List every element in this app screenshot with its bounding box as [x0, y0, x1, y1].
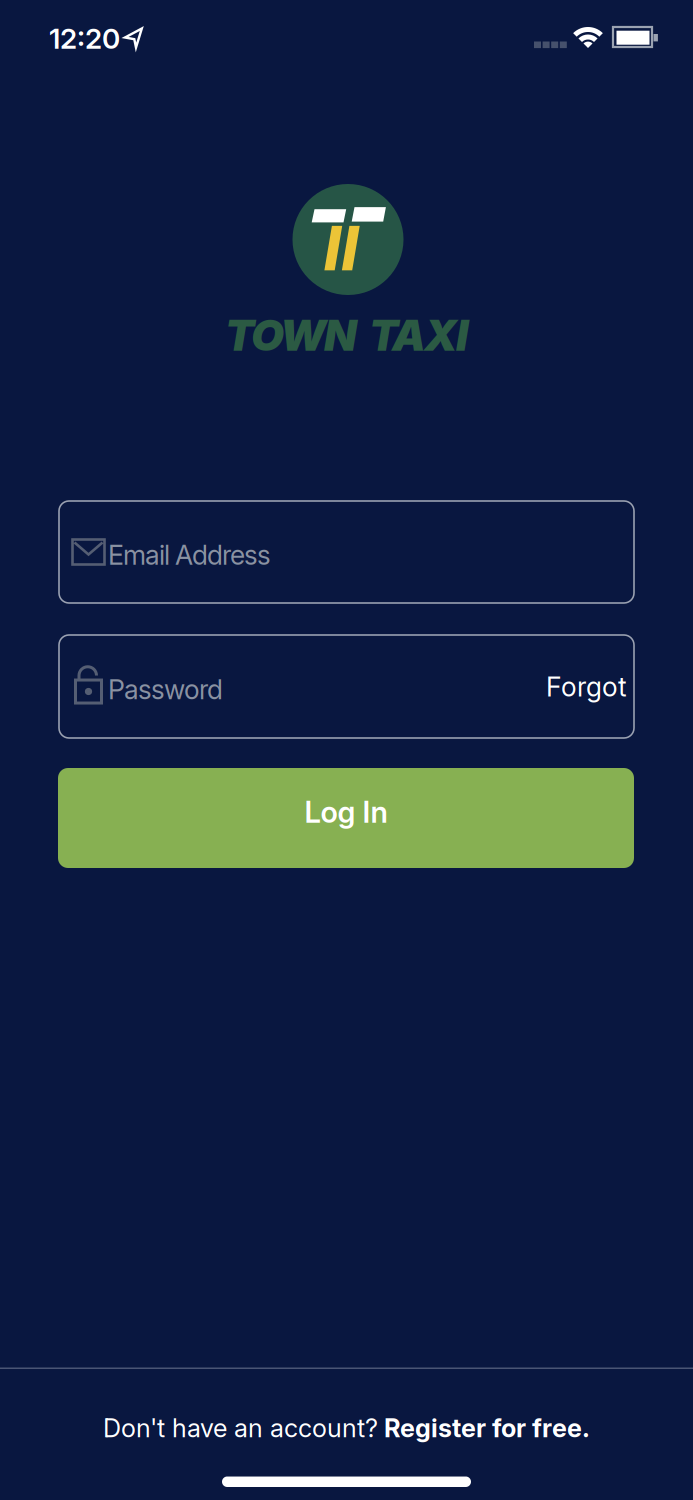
button[interactable]: Email Address	[59, 501, 634, 603]
staticText: Forgot	[546, 671, 627, 702]
staticText: Register for free.	[384, 1413, 590, 1443]
button[interactable]: Don't have an account?	[103, 1413, 590, 1443]
button[interactable]: Log In	[58, 768, 634, 868]
staticText: Don't have an account?	[103, 1413, 378, 1443]
staticText: 12:20	[49, 22, 120, 55]
button[interactable]: Forgot	[546, 671, 627, 702]
staticText: TOWN TAXI	[225, 310, 468, 360]
staticText: Password	[108, 674, 223, 705]
button[interactable]: Password	[59, 635, 634, 738]
staticText: Email Address	[108, 539, 271, 571]
staticText: Log In	[304, 795, 387, 829]
